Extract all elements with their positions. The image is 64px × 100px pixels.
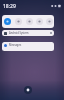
staticText: 18:29 (3, 3, 16, 10)
button[interactable]: Do not disturb (26, 18, 33, 25)
staticText: Android System (9, 31, 29, 35)
button[interactable]: Internet (4, 18, 11, 25)
button[interactable]: Auto-rotate (46, 18, 53, 25)
button[interactable]: Messages (2, 42, 54, 51)
staticText: Messages (9, 43, 22, 47)
button[interactable]: Lock (24, 86, 32, 94)
button[interactable]: Android System (2, 30, 54, 36)
button[interactable]: Flashlight (36, 18, 43, 25)
button[interactable]: Bluetooth (15, 18, 22, 25)
